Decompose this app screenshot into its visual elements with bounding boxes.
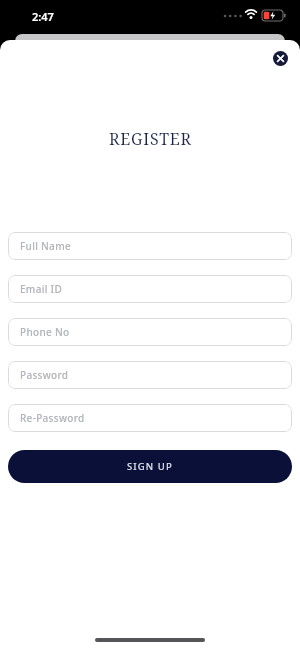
- button[interactable]: Password: [8, 361, 292, 389]
- button[interactable]: Phone No: [8, 318, 292, 346]
- button[interactable]: [273, 51, 288, 66]
- staticText: SIGN UP: [127, 460, 173, 473]
- button[interactable]: Email ID: [8, 275, 292, 303]
- staticText: Full Name: [20, 239, 71, 253]
- button[interactable]: SIGN UP: [8, 450, 292, 483]
- staticText: Re-Password: [20, 411, 85, 425]
- button[interactable]: Full Name: [8, 232, 292, 260]
- staticText: Email ID: [20, 282, 63, 296]
- staticText: Password: [20, 368, 69, 382]
- staticText: 2:47: [32, 9, 54, 24]
- staticText: Phone No: [20, 325, 70, 339]
- button[interactable]: Re-Password: [8, 404, 292, 432]
- staticText: REGISTER: [109, 128, 192, 150]
